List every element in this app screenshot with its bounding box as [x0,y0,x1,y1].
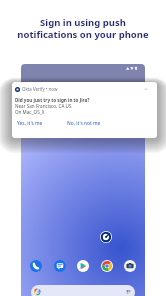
button[interactable]: Phone [30,260,42,272]
button[interactable]: Chrome [101,260,113,272]
staticText: Okta Verify • now [22,86,58,92]
staticText: Did you just try to sign in to Jira? [15,97,90,103]
button[interactable]: Play Store [77,260,89,272]
staticText: No, it's not me [67,120,101,127]
staticText: Near San Francisco, CA US [15,103,72,109]
staticText: On Mac_OS_X [15,109,45,115]
button[interactable]: Okta Verify [100,231,112,243]
staticText: Yes, it's me [17,120,43,127]
button[interactable]: Yes, it's me [16,119,44,128]
staticText: Sign in using push notifications on your… [17,16,149,41]
button[interactable]: Search [31,285,135,296]
button[interactable]: No, it's not me [66,119,102,128]
button[interactable]: Messages [54,260,66,272]
button[interactable]: Camera [124,260,136,272]
button[interactable]: Okta Verify • now [12,82,157,138]
